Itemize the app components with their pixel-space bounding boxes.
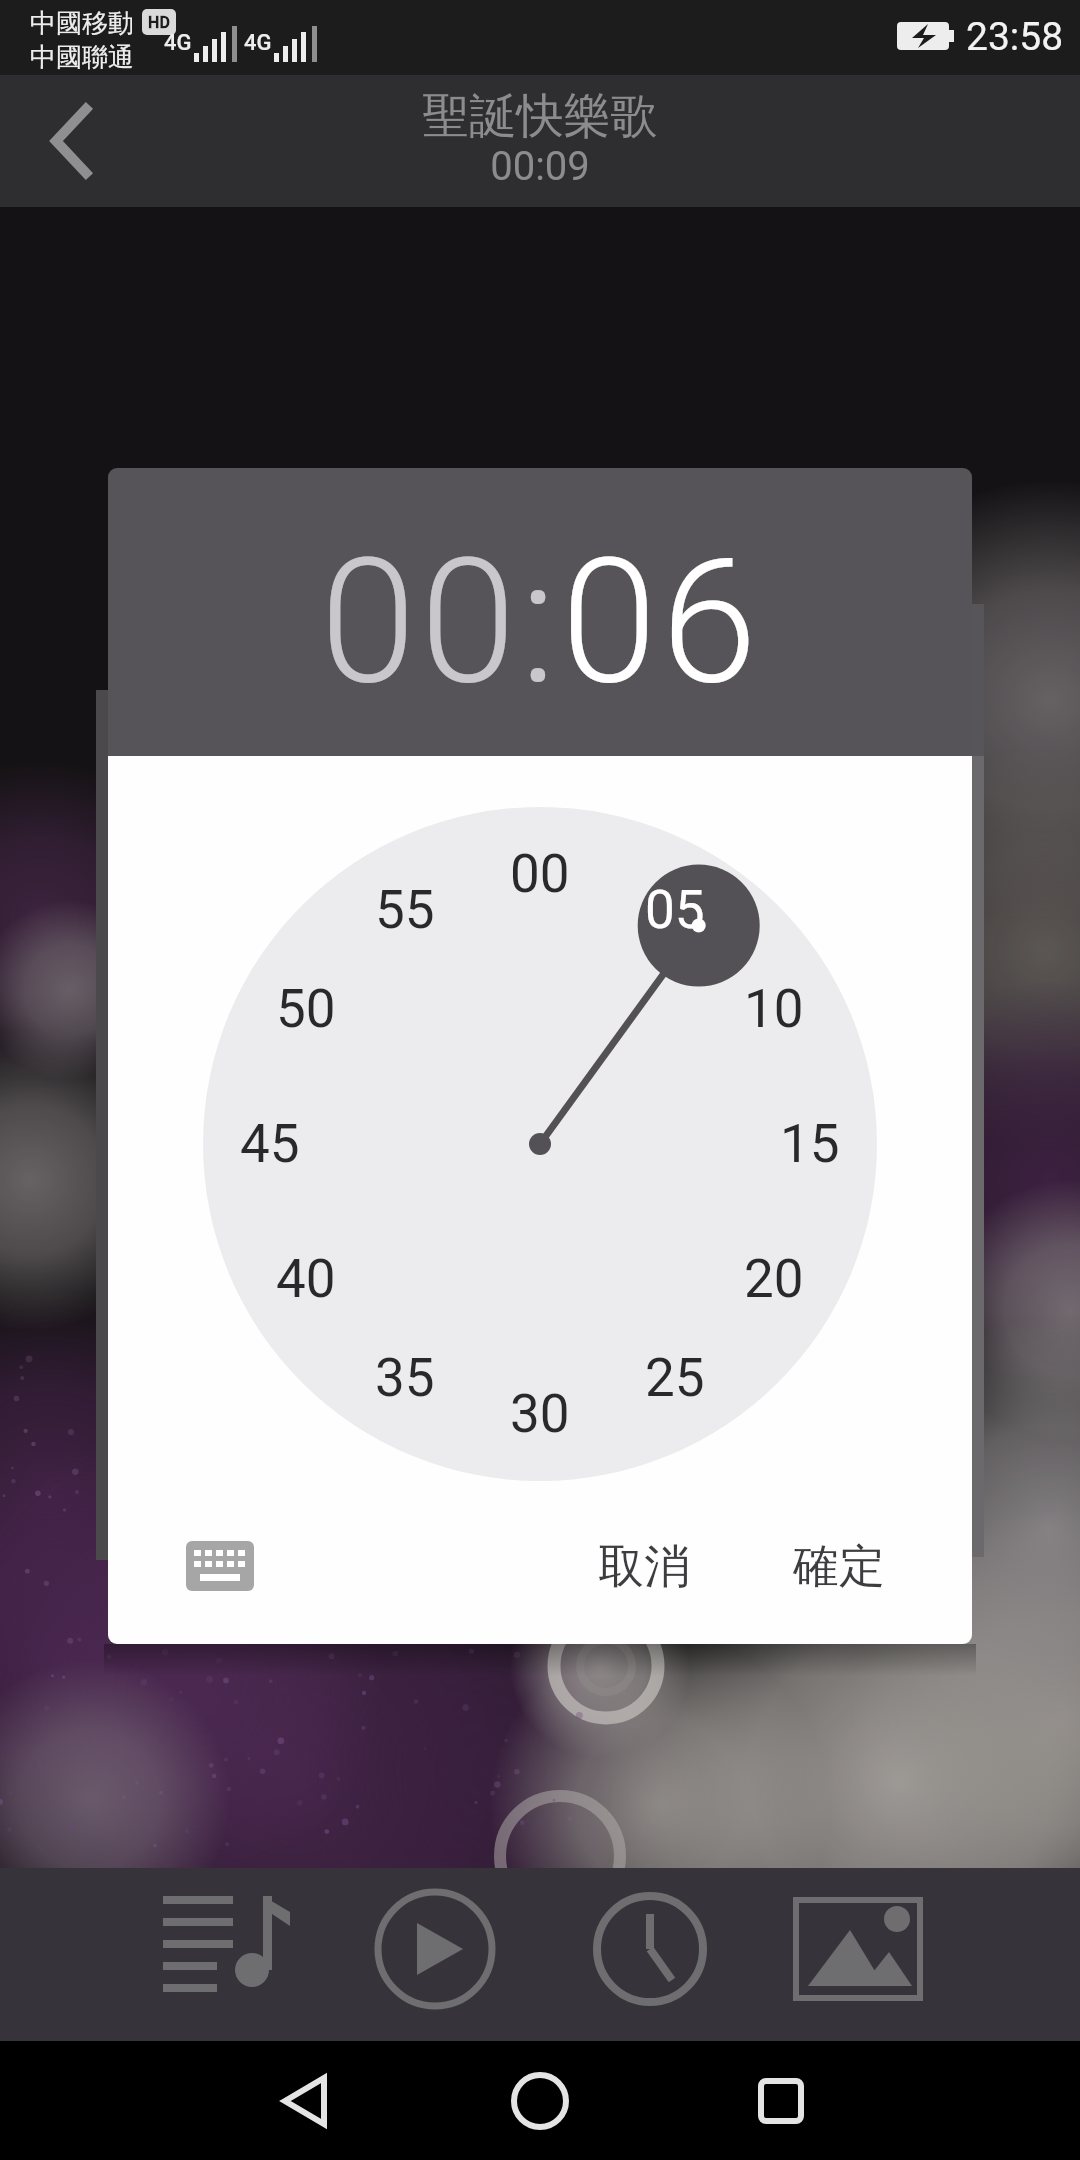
staticText: HD [148, 13, 170, 32]
staticText: 20 [744, 1248, 804, 1310]
button[interactable] [230, 2046, 390, 2156]
staticText: 25 [645, 1347, 705, 1409]
button[interactable] [170, 1528, 270, 1604]
staticText: 4G [244, 30, 272, 56]
staticText: 取消 [598, 1538, 690, 1596]
button[interactable] [775, 1878, 945, 2028]
button[interactable] [140, 1878, 310, 2028]
staticText: 50 [276, 978, 336, 1040]
button[interactable]: 確定 [749, 1522, 929, 1612]
staticText: 中國移動 [30, 7, 134, 40]
staticText: 10 [744, 978, 804, 1040]
staticText: 確定 [793, 1538, 885, 1596]
button[interactable] [565, 1878, 735, 2028]
staticText: 聖誕快樂歌 [0, 87, 1080, 146]
staticText: 中國聯通 [30, 41, 134, 74]
staticText: 4G [164, 30, 192, 56]
staticText: 00 [510, 843, 570, 905]
button[interactable]: 取消 [554, 1522, 734, 1612]
staticText: 06 [561, 521, 761, 724]
staticText: 30 [510, 1383, 570, 1445]
staticText: 55 [375, 879, 435, 941]
staticText: 05 [645, 879, 705, 941]
staticText: 15 [780, 1113, 840, 1175]
staticText: 40 [276, 1248, 336, 1310]
button[interactable] [690, 2046, 850, 2156]
staticText: 35 [375, 1347, 435, 1409]
button[interactable] [460, 2046, 620, 2156]
staticText: 00: [320, 521, 561, 724]
staticText: 00:09 [0, 143, 1080, 190]
button[interactable] [350, 1878, 520, 2028]
button[interactable] [20, 95, 120, 187]
staticText: 45 [240, 1113, 300, 1175]
staticText: 23:58 [966, 14, 1064, 60]
